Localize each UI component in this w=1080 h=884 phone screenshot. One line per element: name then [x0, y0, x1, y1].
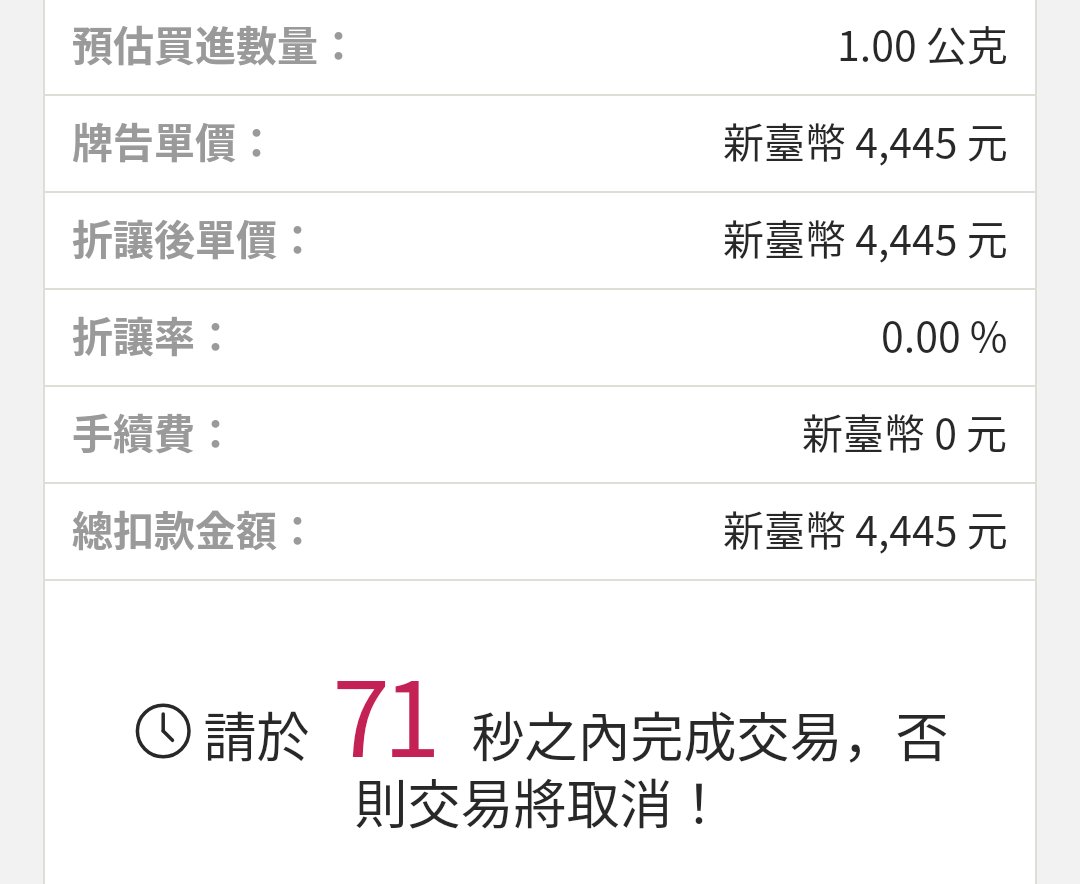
staticText: 手續費：	[72, 401, 236, 460]
staticText: 折讓率：	[72, 304, 236, 363]
staticText: 新臺幣 4,445 元	[723, 110, 1008, 169]
button[interactable]: 預估買進數量：	[43, 0, 1037, 96]
button[interactable]: 折讓後單價：	[43, 193, 1037, 290]
staticText: 新臺幣 4,445 元	[723, 207, 1008, 266]
staticText: 牌告單價：	[72, 110, 277, 169]
staticText: 折讓後單價：	[72, 207, 318, 266]
button[interactable]: 牌告單價：	[43, 96, 1037, 193]
staticText: 1.00 公克	[837, 13, 1008, 72]
other: Countdown timer	[131, 709, 203, 759]
staticText: 新臺幣 4,445 元	[723, 498, 1008, 557]
staticText: 預估買進數量：	[72, 13, 359, 72]
staticText: 新臺幣 0 元	[802, 401, 1008, 460]
staticText: 總扣款金額：	[72, 498, 318, 557]
staticText: 0.00 %	[881, 304, 1008, 363]
button[interactable]: 總扣款金額：	[43, 484, 1037, 581]
button[interactable]: 手續費：	[43, 387, 1037, 484]
button[interactable]: 折讓率：	[43, 290, 1037, 387]
staticText: [c]請於 71 秒之內完成交易，否 則交易將取消！	[83, 636, 997, 839]
